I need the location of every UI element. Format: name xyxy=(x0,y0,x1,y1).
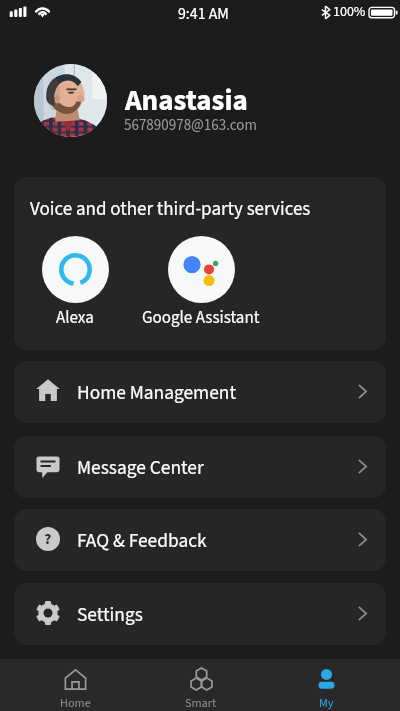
staticText: FAQ & Feedback xyxy=(77,527,207,555)
button[interactable]: Message Center xyxy=(14,436,386,498)
staticText: Google Assistant xyxy=(142,306,260,330)
staticText: Anastasia xyxy=(125,80,248,121)
staticText: ? xyxy=(44,528,52,551)
button[interactable]: Anastasia xyxy=(0,0,400,160)
button[interactable]: Smart xyxy=(138,659,264,711)
staticText: Settings xyxy=(77,601,143,629)
button[interactable]: My xyxy=(263,659,389,711)
staticText: 100% xyxy=(333,2,366,22)
staticText: Message Center xyxy=(77,454,204,482)
staticText: Voice and other third-party services xyxy=(30,196,311,223)
button[interactable]: Home Management xyxy=(14,361,386,423)
staticText: Home xyxy=(60,695,91,711)
button[interactable]: Home xyxy=(12,659,138,711)
button[interactable]: Google Assistant xyxy=(141,236,261,330)
button[interactable]: Settings xyxy=(14,583,386,645)
staticText: Smart xyxy=(185,695,217,711)
staticText: Alexa xyxy=(56,306,94,330)
staticText: My xyxy=(319,695,334,711)
staticText: 9:41 AM xyxy=(178,3,229,25)
staticText: Home Management xyxy=(77,379,236,407)
button[interactable]: Alexa xyxy=(15,236,135,330)
button[interactable]: ? xyxy=(14,509,386,571)
staticText: 567890978@163.com xyxy=(124,115,257,136)
